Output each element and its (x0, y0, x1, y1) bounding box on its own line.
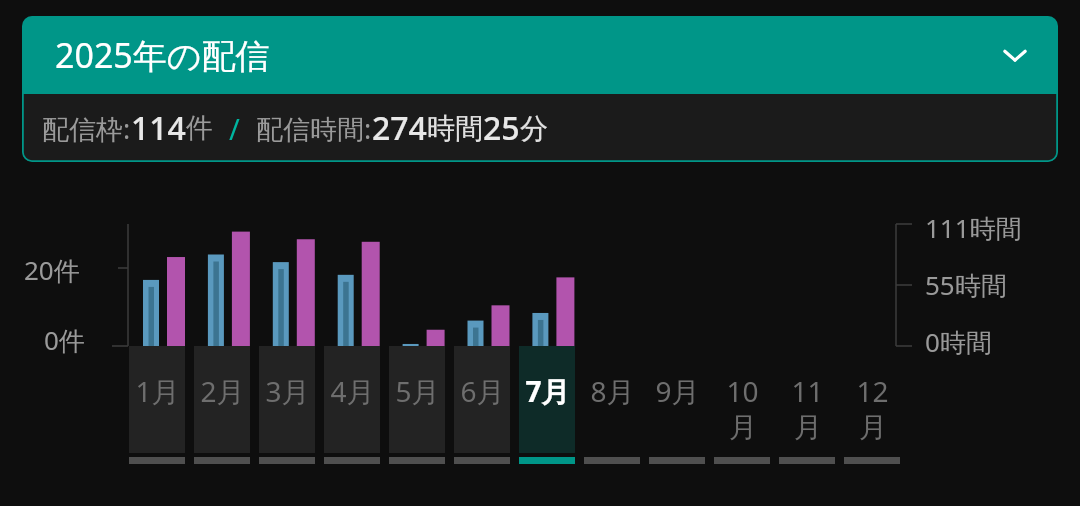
button[interactable]: 11 (779, 346, 835, 464)
staticText: 0時間 (925, 324, 992, 360)
button[interactable]: 2025年の配信 (22, 16, 1058, 162)
staticText: 274 (372, 106, 427, 150)
button[interactable]: 8月 (584, 346, 640, 464)
staticText: 20件 (24, 252, 80, 288)
staticText: 9月 (655, 372, 700, 410)
staticText: 111時間 (925, 210, 1022, 246)
staticText: 月 (729, 410, 757, 445)
button[interactable]: 5月 (389, 346, 445, 464)
button[interactable]: 3月 (259, 346, 315, 464)
staticText: 配信時間: (256, 110, 372, 147)
staticText: 6月 (460, 372, 505, 410)
staticText: 11 (791, 372, 824, 410)
button[interactable]: 6月 (454, 346, 510, 464)
staticText: 0件 (44, 322, 85, 358)
staticText: 114 (131, 106, 186, 150)
staticText: 7月 (525, 372, 570, 410)
button[interactable]: 12 (844, 346, 900, 464)
staticText: 25 (483, 106, 520, 150)
staticText: 2月 (200, 372, 245, 410)
staticText: 12 (856, 372, 889, 410)
staticText: 件 (186, 111, 213, 145)
staticText: 月 (859, 410, 887, 445)
staticText: 2025年の配信 (55, 32, 270, 78)
staticText: 1月 (135, 372, 180, 410)
button[interactable]: 10 (714, 346, 770, 464)
button[interactable]: 4月 (324, 346, 380, 464)
staticText: / (229, 109, 240, 148)
staticText: 55時間 (925, 267, 1007, 303)
staticText: 3月 (265, 372, 310, 410)
staticText: 時間 (427, 111, 483, 146)
staticText: 月 (794, 410, 822, 445)
staticText: 8月 (590, 372, 635, 410)
staticText: 4月 (330, 372, 375, 410)
staticText: 配信枠: (42, 110, 131, 147)
button[interactable]: 2月 (194, 346, 250, 464)
other: Collapse (998, 38, 1032, 72)
button[interactable]: 1月 (129, 346, 185, 464)
button[interactable]: 7月 (519, 346, 575, 464)
staticText: 10 (726, 372, 759, 410)
staticText: 5月 (395, 372, 440, 410)
staticText: 分 (520, 111, 548, 146)
button[interactable]: 9月 (649, 346, 705, 464)
